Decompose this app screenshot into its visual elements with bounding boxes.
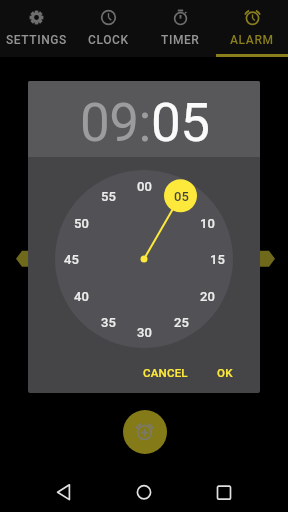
button[interactable]: 20: [193, 286, 221, 306]
staticText: 30: [137, 325, 152, 340]
button[interactable]: 25: [167, 312, 195, 332]
button[interactable]: 55: [94, 186, 122, 206]
staticText: 35: [101, 315, 116, 330]
button[interactable]: TIMER: [144, 0, 216, 57]
button[interactable]: OK: [217, 366, 233, 379]
button[interactable]: 15: [203, 249, 231, 269]
staticText: ALARM: [230, 33, 274, 47]
staticText: 45: [64, 252, 79, 267]
staticText: CLOCK: [88, 33, 129, 47]
staticText: 55: [101, 189, 116, 204]
staticText: 00: [137, 179, 152, 194]
staticText: 05: [174, 189, 189, 204]
button[interactable]: 40: [67, 286, 95, 306]
button[interactable]: [40, 468, 88, 512]
button[interactable]: [200, 468, 248, 512]
button[interactable]: ALARM: [216, 0, 288, 57]
button[interactable]: 05: [167, 186, 195, 206]
button[interactable]: 45: [57, 249, 85, 269]
staticText: 15: [210, 252, 225, 267]
staticText: TIMER: [161, 33, 200, 47]
button[interactable]: 10: [193, 213, 221, 233]
staticText: 40: [74, 289, 89, 304]
button[interactable]: [123, 410, 167, 454]
staticText: 20: [200, 289, 215, 304]
staticText: CANCEL: [143, 366, 188, 379]
staticText: 50: [74, 216, 89, 231]
button[interactable]: 35: [94, 312, 122, 332]
staticText: 10: [200, 216, 215, 231]
staticText: SETTINGS: [6, 33, 67, 47]
staticText: 09:05: [80, 92, 210, 154]
button[interactable]: 50: [67, 213, 95, 233]
staticText: 25: [174, 315, 189, 330]
button[interactable]: 30: [130, 322, 158, 342]
button[interactable]: CANCEL: [143, 366, 188, 379]
button[interactable]: [120, 468, 168, 512]
button[interactable]: 00: [130, 176, 158, 196]
button[interactable]: CLOCK: [72, 0, 144, 57]
staticText: OK: [217, 366, 233, 379]
button[interactable]: SETTINGS: [0, 0, 72, 57]
